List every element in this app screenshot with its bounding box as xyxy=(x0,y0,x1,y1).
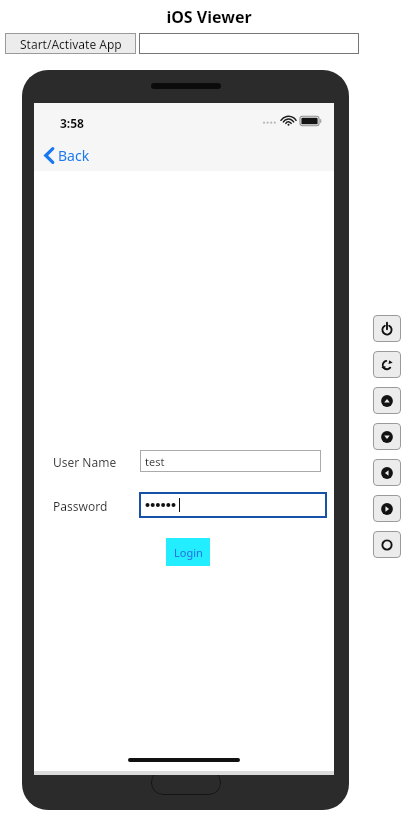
staticText: Password xyxy=(53,498,108,514)
button[interactable]: Login xyxy=(166,538,210,566)
button[interactable] xyxy=(139,492,327,518)
staticText: iOS Viewer xyxy=(166,6,252,28)
staticText: User Name xyxy=(53,454,117,470)
button[interactable]: Rotate xyxy=(373,351,401,378)
button[interactable]: Start/Activate App xyxy=(5,33,136,54)
button[interactable] xyxy=(139,33,359,54)
button[interactable]: Forward xyxy=(373,495,401,522)
button[interactable]: Home xyxy=(151,770,221,795)
staticText: Back xyxy=(58,146,90,165)
staticText: test xyxy=(145,454,165,469)
button[interactable]: Back xyxy=(373,459,401,486)
staticText: Start/Activate App xyxy=(20,36,122,52)
button[interactable]: Home xyxy=(373,531,401,558)
button[interactable]: test xyxy=(140,450,321,472)
staticText: Login xyxy=(174,545,203,560)
button[interactable]: Back xyxy=(44,143,90,167)
staticText: 3:58 xyxy=(60,115,84,131)
button[interactable]: Scroll up xyxy=(373,387,401,414)
button[interactable]: Scroll down xyxy=(373,423,401,450)
button[interactable]: Power xyxy=(373,315,401,342)
